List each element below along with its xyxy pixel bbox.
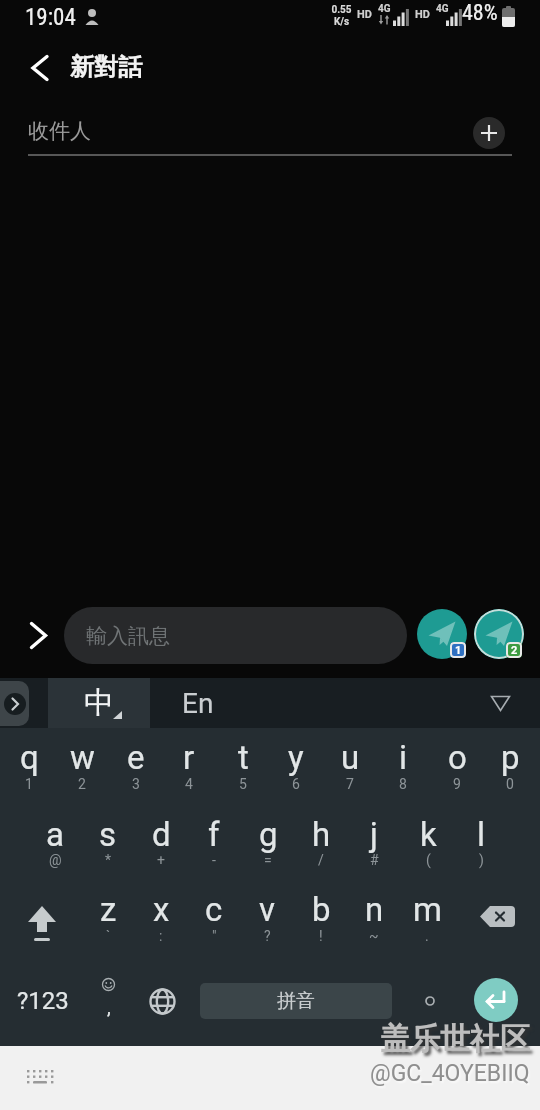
button[interactable] bbox=[20, 615, 56, 655]
button[interactable] bbox=[136, 978, 188, 1024]
button[interactable]: f bbox=[187, 812, 241, 856]
staticText: - bbox=[212, 852, 216, 868]
staticText: 2 bbox=[511, 644, 518, 657]
button[interactable] bbox=[20, 48, 60, 88]
button[interactable]: x bbox=[134, 887, 188, 931]
button[interactable]: m bbox=[400, 887, 454, 931]
button[interactable]: e bbox=[109, 735, 163, 779]
staticText: 0.55 K/s bbox=[331, 4, 352, 28]
staticText: 輸入訊息 bbox=[86, 623, 170, 649]
button[interactable]: , bbox=[82, 975, 136, 1027]
staticText: w bbox=[70, 738, 95, 777]
button[interactable]: v bbox=[240, 887, 294, 931]
staticText: h bbox=[312, 815, 331, 854]
staticText: ) bbox=[479, 852, 484, 868]
button[interactable]: g bbox=[241, 812, 295, 856]
button[interactable] bbox=[482, 686, 518, 720]
button[interactable]: a bbox=[28, 812, 82, 856]
button[interactable] bbox=[417, 609, 467, 659]
staticText: ~ bbox=[369, 928, 379, 944]
staticText: g bbox=[259, 815, 278, 854]
staticText: ! bbox=[319, 928, 323, 944]
button[interactable]: c bbox=[187, 887, 241, 931]
staticText: 48% bbox=[462, 0, 498, 26]
staticText: 7 bbox=[346, 776, 354, 792]
staticText: r bbox=[183, 738, 195, 777]
staticText: , bbox=[107, 996, 111, 1018]
staticText: p bbox=[501, 738, 520, 777]
button[interactable] bbox=[473, 898, 521, 934]
staticText: f bbox=[208, 815, 220, 854]
staticText: 6 bbox=[292, 776, 300, 792]
button[interactable]: j bbox=[347, 812, 401, 856]
button[interactable] bbox=[474, 978, 518, 1022]
staticText: n bbox=[365, 890, 384, 929]
staticText: 2 bbox=[78, 776, 86, 792]
staticText: z bbox=[100, 890, 117, 929]
staticText: ?123 bbox=[17, 987, 69, 1015]
button[interactable]: s bbox=[81, 812, 135, 856]
staticText: 4 bbox=[185, 776, 193, 792]
button[interactable]: r bbox=[162, 735, 216, 779]
staticText: : bbox=[159, 928, 163, 944]
button[interactable]: y bbox=[269, 735, 323, 779]
staticText: ? bbox=[264, 928, 271, 944]
staticText: + bbox=[157, 852, 165, 868]
staticText: 1 bbox=[455, 644, 462, 657]
button[interactable]: 拼音 bbox=[200, 983, 392, 1019]
staticText: d bbox=[152, 815, 171, 854]
button[interactable]: k bbox=[401, 812, 455, 856]
button[interactable] bbox=[404, 978, 456, 1024]
button[interactable]: q bbox=[2, 735, 56, 779]
staticText: HD bbox=[357, 8, 372, 21]
staticText: . bbox=[425, 928, 429, 944]
button[interactable] bbox=[474, 609, 524, 659]
button[interactable]: p bbox=[483, 735, 537, 779]
staticText: 4G bbox=[378, 3, 391, 15]
button[interactable]: t bbox=[216, 735, 270, 779]
staticText: 0 bbox=[506, 776, 514, 792]
button[interactable] bbox=[0, 681, 29, 726]
button[interactable]: i bbox=[376, 735, 430, 779]
button[interactable]: 輸入訊息 bbox=[64, 607, 407, 664]
staticText: o bbox=[448, 738, 467, 777]
staticText: i bbox=[399, 738, 408, 777]
staticText: 19:04 bbox=[25, 4, 76, 31]
button[interactable]: u bbox=[323, 735, 377, 779]
staticText: b bbox=[312, 890, 331, 929]
staticText: 拼音 bbox=[277, 989, 315, 1013]
staticText: v bbox=[259, 890, 275, 929]
staticText: # bbox=[370, 852, 379, 868]
staticText: / bbox=[318, 852, 324, 868]
button[interactable]: z bbox=[81, 887, 135, 931]
staticText: 中 bbox=[84, 684, 114, 722]
staticText: HD bbox=[415, 8, 430, 21]
button[interactable]: h bbox=[294, 812, 348, 856]
button[interactable] bbox=[473, 117, 505, 149]
staticText: 5 bbox=[239, 776, 247, 792]
staticText: 3 bbox=[132, 776, 140, 792]
button[interactable]: l bbox=[454, 812, 508, 856]
staticText: = bbox=[264, 852, 272, 868]
staticText: u bbox=[341, 738, 360, 777]
button[interactable] bbox=[18, 900, 66, 950]
staticText: @ bbox=[49, 852, 62, 868]
staticText: 盖乐世社区 bbox=[380, 1020, 530, 1058]
button[interactable]: 中 bbox=[48, 678, 150, 728]
button[interactable]: w bbox=[55, 735, 109, 779]
button[interactable]: d bbox=[134, 812, 188, 856]
staticText: e bbox=[127, 738, 145, 777]
staticText: 4G bbox=[436, 3, 449, 15]
staticText: 1 bbox=[25, 776, 33, 792]
staticText: * bbox=[105, 852, 112, 868]
staticText: 新對話 bbox=[70, 52, 142, 82]
button[interactable]: n bbox=[347, 887, 401, 931]
button[interactable]: o bbox=[430, 735, 484, 779]
staticText: c bbox=[205, 890, 223, 929]
button[interactable]: b bbox=[294, 887, 348, 931]
button[interactable]: ?123 bbox=[10, 980, 76, 1022]
staticText: " bbox=[212, 928, 217, 944]
button[interactable]: En bbox=[150, 678, 246, 728]
staticText: j bbox=[370, 815, 378, 854]
staticText: ` bbox=[106, 928, 111, 944]
